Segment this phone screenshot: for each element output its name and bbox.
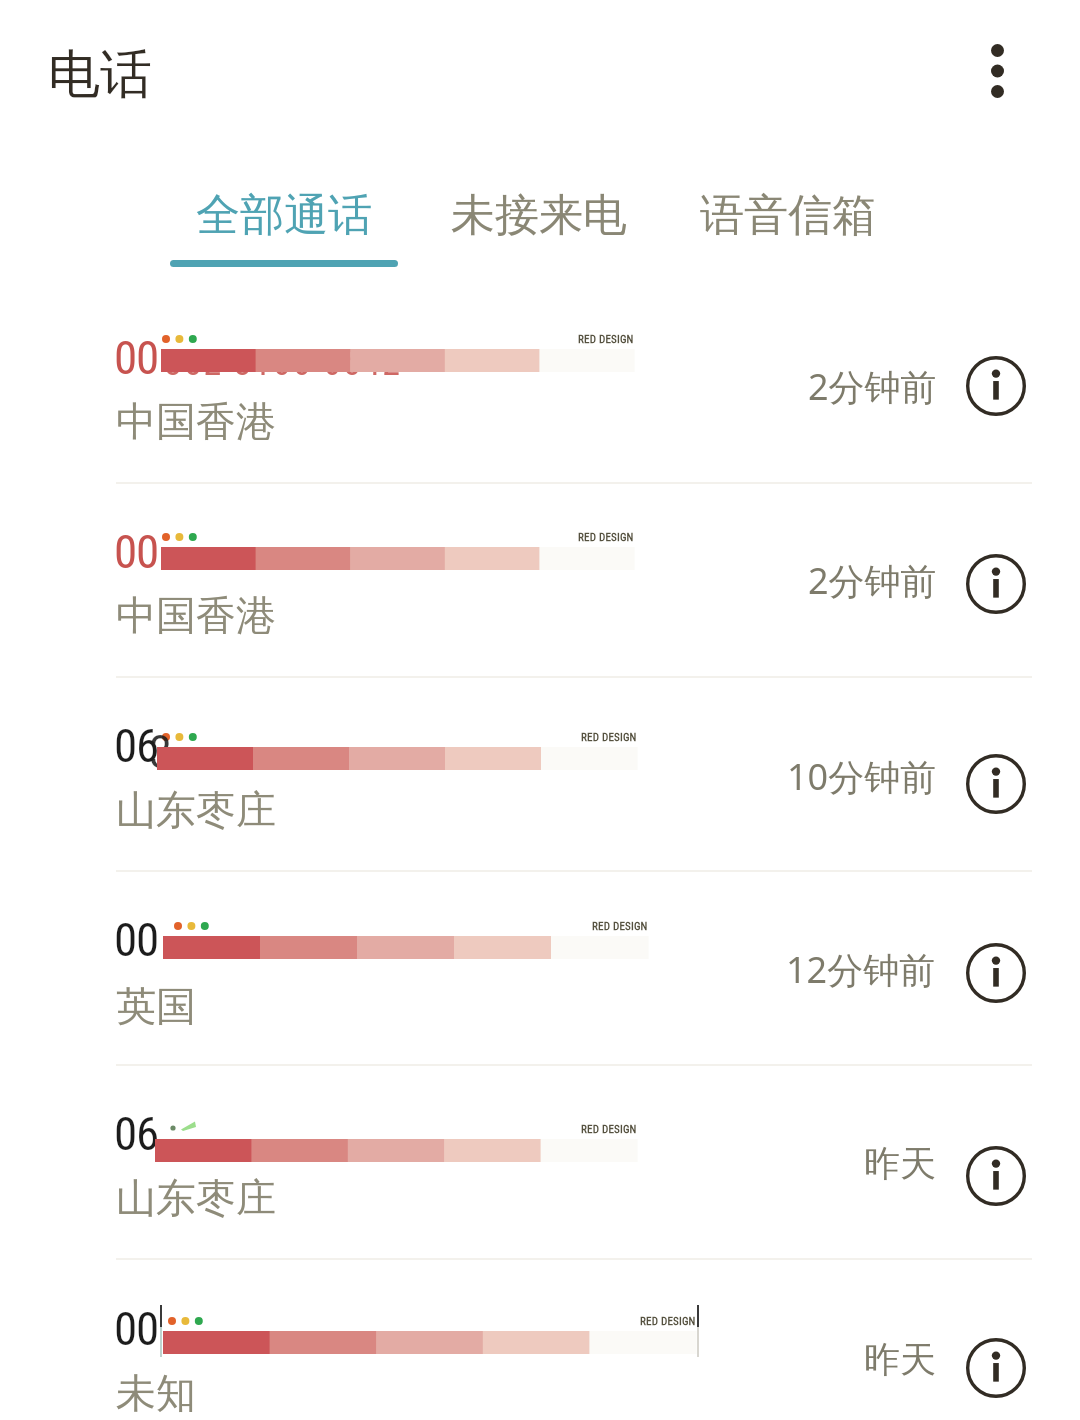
button[interactable]: Call details bbox=[954, 1326, 1038, 1410]
staticText: 昨天 bbox=[864, 1141, 936, 1186]
button[interactable] bbox=[0, 1091, 1080, 1289]
button[interactable] bbox=[0, 301, 1080, 499]
staticText: 06 bbox=[114, 718, 159, 773]
button[interactable]: Call details bbox=[954, 1134, 1038, 1218]
staticText: 未接来电 bbox=[451, 188, 627, 243]
button[interactable]: Call details bbox=[954, 542, 1038, 626]
staticText: RED DESIGN bbox=[581, 731, 637, 744]
staticText: 山东枣庄 bbox=[116, 785, 276, 835]
staticText: RED DESIGN bbox=[578, 333, 634, 346]
button[interactable]: 未接来电 bbox=[425, 180, 653, 272]
button[interactable]: 全部通话 bbox=[170, 180, 398, 272]
button[interactable]: Call details bbox=[954, 931, 1038, 1015]
button[interactable] bbox=[0, 499, 1080, 697]
staticText: 2分钟前 bbox=[808, 362, 937, 411]
staticText: 00 bbox=[114, 524, 159, 579]
staticText: 电话 bbox=[48, 42, 152, 108]
staticText: 852 8100 6542 bbox=[164, 342, 403, 384]
staticText: 00 bbox=[114, 330, 159, 385]
staticText: 00 bbox=[114, 1301, 159, 1356]
staticText: 10分钟前 bbox=[787, 752, 937, 801]
staticText: RED DESIGN bbox=[592, 920, 648, 933]
staticText: RED DESIGN bbox=[581, 1123, 637, 1136]
button[interactable]: Call details bbox=[954, 742, 1038, 826]
staticText: 全部通话 bbox=[196, 188, 372, 243]
button[interactable] bbox=[0, 888, 1080, 1086]
staticText: 00 bbox=[114, 912, 159, 967]
staticText: 未知 bbox=[116, 1368, 196, 1418]
button[interactable] bbox=[0, 1283, 1080, 1420]
button[interactable]: 语音信箱 bbox=[674, 180, 902, 272]
staticText: 中国香港 bbox=[116, 396, 276, 446]
staticText: 2分钟前 bbox=[808, 556, 937, 605]
staticText: 06 bbox=[114, 1106, 159, 1161]
staticText: 语音信箱 bbox=[700, 188, 876, 243]
button[interactable] bbox=[0, 699, 1080, 897]
staticText: RED DESIGN bbox=[640, 1315, 696, 1328]
button[interactable]: Call details bbox=[954, 344, 1038, 428]
staticText: 昨天 bbox=[864, 1337, 936, 1382]
staticText: 12分钟前 bbox=[786, 945, 936, 994]
staticText: 山东枣庄 bbox=[116, 1173, 276, 1223]
staticText: 3 bbox=[149, 724, 175, 779]
staticText: 英国 bbox=[116, 981, 196, 1031]
staticText: 中国香港 bbox=[116, 590, 276, 640]
staticText: RED DESIGN bbox=[578, 531, 634, 544]
button[interactable]: More options bbox=[958, 25, 1036, 117]
